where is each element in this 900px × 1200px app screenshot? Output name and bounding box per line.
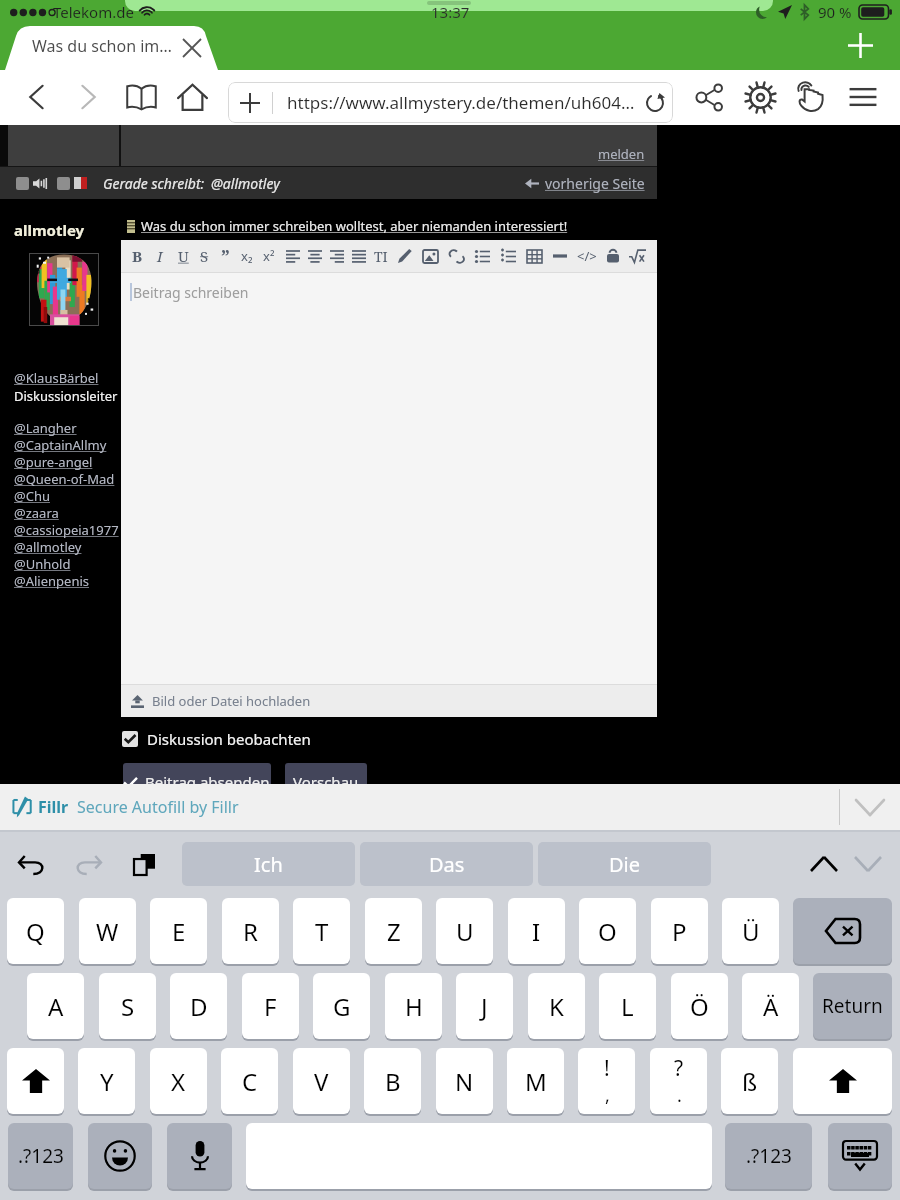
button[interactable]: vorherige Seite <box>525 174 645 193</box>
staticText: R <box>243 915 258 948</box>
button[interactable]: @Chu <box>14 487 50 504</box>
button[interactable]: @zaara <box>14 504 59 521</box>
button[interactable]: X <box>150 1048 207 1114</box>
button[interactable]: Ich <box>182 842 355 886</box>
button[interactable]: Undo <box>8 840 56 888</box>
staticText: @Alienpenis <box>14 572 90 589</box>
button[interactable]: Next field <box>846 842 890 886</box>
button[interactable]: @KlausBärbel <box>14 369 99 387</box>
staticText: T <box>315 915 329 948</box>
button[interactable]: @pure-angel <box>14 453 93 470</box>
button[interactable]: Vorschau <box>285 763 367 800</box>
button[interactable]: P <box>651 898 708 964</box>
button[interactable]: .?123 <box>8 1123 73 1189</box>
button[interactable]: E <box>150 898 207 964</box>
button[interactable]: Paste <box>120 840 168 888</box>
button[interactable]: U <box>436 898 493 964</box>
button[interactable]: @Langher <box>14 419 77 436</box>
button[interactable]: Backspace <box>793 898 892 964</box>
staticText: allmotley <box>14 220 85 240</box>
button[interactable]: N <box>436 1048 493 1114</box>
button[interactable]: Was du schon im… <box>5 26 218 70</box>
button[interactable]: W <box>79 898 136 964</box>
button[interactable]: D <box>170 973 227 1039</box>
button[interactable]: Ö <box>671 973 728 1039</box>
button[interactable]: Bild oder Datei hochladen <box>121 685 657 717</box>
button[interactable]: Share <box>687 75 731 119</box>
button[interactable]: Redo <box>64 840 112 888</box>
button[interactable]: M <box>507 1048 564 1114</box>
button[interactable]: Back <box>15 75 59 119</box>
button[interactable]: F <box>242 973 299 1039</box>
button[interactable]: Bookmarks <box>119 75 163 119</box>
button[interactable]: J <box>456 973 513 1039</box>
button[interactable]: https://www.allmystery.de/themen/uh604… <box>228 82 673 123</box>
button[interactable]: Beitrag absenden <box>123 763 271 800</box>
staticText: ” <box>221 244 230 269</box>
staticText: https://www.allmystery.de/themen/uh604… <box>287 91 635 114</box>
button[interactable]: O <box>579 898 636 964</box>
button[interactable] <box>122 731 138 747</box>
button[interactable]: G <box>313 973 370 1039</box>
button[interactable]: New tab <box>836 21 884 69</box>
button[interactable]: Hide keyboard <box>828 1123 892 1189</box>
button[interactable]: L <box>599 973 656 1039</box>
button[interactable]: @allmotley <box>14 538 82 555</box>
button[interactable]: Forward <box>66 75 110 119</box>
button[interactable]: Was du schon immer schreiben wolltest, a… <box>126 217 568 235</box>
button[interactable]: I <box>508 898 565 964</box>
button[interactable]: Ü <box>722 898 779 964</box>
button[interactable]: ? <box>650 1048 707 1114</box>
staticText: F <box>264 990 277 1023</box>
button[interactable]: V <box>293 1048 350 1114</box>
button[interactable]: Ä <box>742 973 799 1039</box>
button[interactable]: Shift <box>793 1048 892 1114</box>
button[interactable]: @cassiopeia1977 <box>14 521 119 538</box>
button[interactable]: Previous field <box>802 842 846 886</box>
button[interactable]: Z <box>365 898 422 964</box>
button[interactable]: R <box>222 898 279 964</box>
button[interactable]: Menu <box>841 75 885 119</box>
button[interactable]: Y <box>78 1048 135 1114</box>
staticText: @zaara <box>14 504 59 521</box>
button[interactable]: @Queen-of-Mad <box>14 470 115 487</box>
button[interactable]: S <box>99 973 156 1039</box>
button[interactable]: B <box>364 1048 421 1114</box>
button[interactable]: @Unhold <box>14 555 71 572</box>
button[interactable]: H <box>385 973 442 1039</box>
button[interactable]: K <box>528 973 585 1039</box>
staticText: , <box>605 1083 610 1108</box>
button[interactable]: Close tab <box>170 26 214 70</box>
button[interactable]: Shift <box>7 1048 64 1114</box>
button[interactable]: C <box>221 1048 278 1114</box>
staticText: @allmotley <box>211 174 280 193</box>
button[interactable]: Q <box>7 898 64 964</box>
button[interactable]: ß <box>721 1048 778 1114</box>
staticText: L <box>621 990 634 1023</box>
button[interactable]: .?123 <box>725 1123 812 1189</box>
button[interactable]: Return <box>813 973 892 1039</box>
staticText: Diskussion beobachten <box>147 729 311 749</box>
button[interactable]: Home <box>170 75 214 119</box>
button[interactable]: Emoji <box>88 1123 152 1189</box>
staticText: Telekom.de <box>53 2 134 22</box>
button[interactable]: Dictation <box>167 1123 232 1189</box>
staticText: TI <box>374 247 388 266</box>
button[interactable]: Touch mode <box>789 75 833 119</box>
button[interactable]: Collapse autofill <box>840 784 900 830</box>
staticText: D <box>190 990 208 1023</box>
button[interactable]: Das <box>360 842 533 886</box>
button[interactable]: Settings <box>738 75 782 119</box>
staticText: S <box>121 990 135 1023</box>
staticText: Die <box>609 851 641 878</box>
button[interactable]: @CaptainAllmy <box>14 436 107 453</box>
button[interactable]: melden <box>598 145 645 163</box>
button[interactable]: A <box>27 973 84 1039</box>
button[interactable]: T <box>293 898 350 964</box>
staticText: @CaptainAllmy <box>14 436 107 453</box>
staticText: H <box>405 990 423 1023</box>
button[interactable]: ! <box>578 1048 635 1114</box>
button[interactable]: Die <box>538 842 711 886</box>
button[interactable]: @Alienpenis <box>14 572 90 589</box>
